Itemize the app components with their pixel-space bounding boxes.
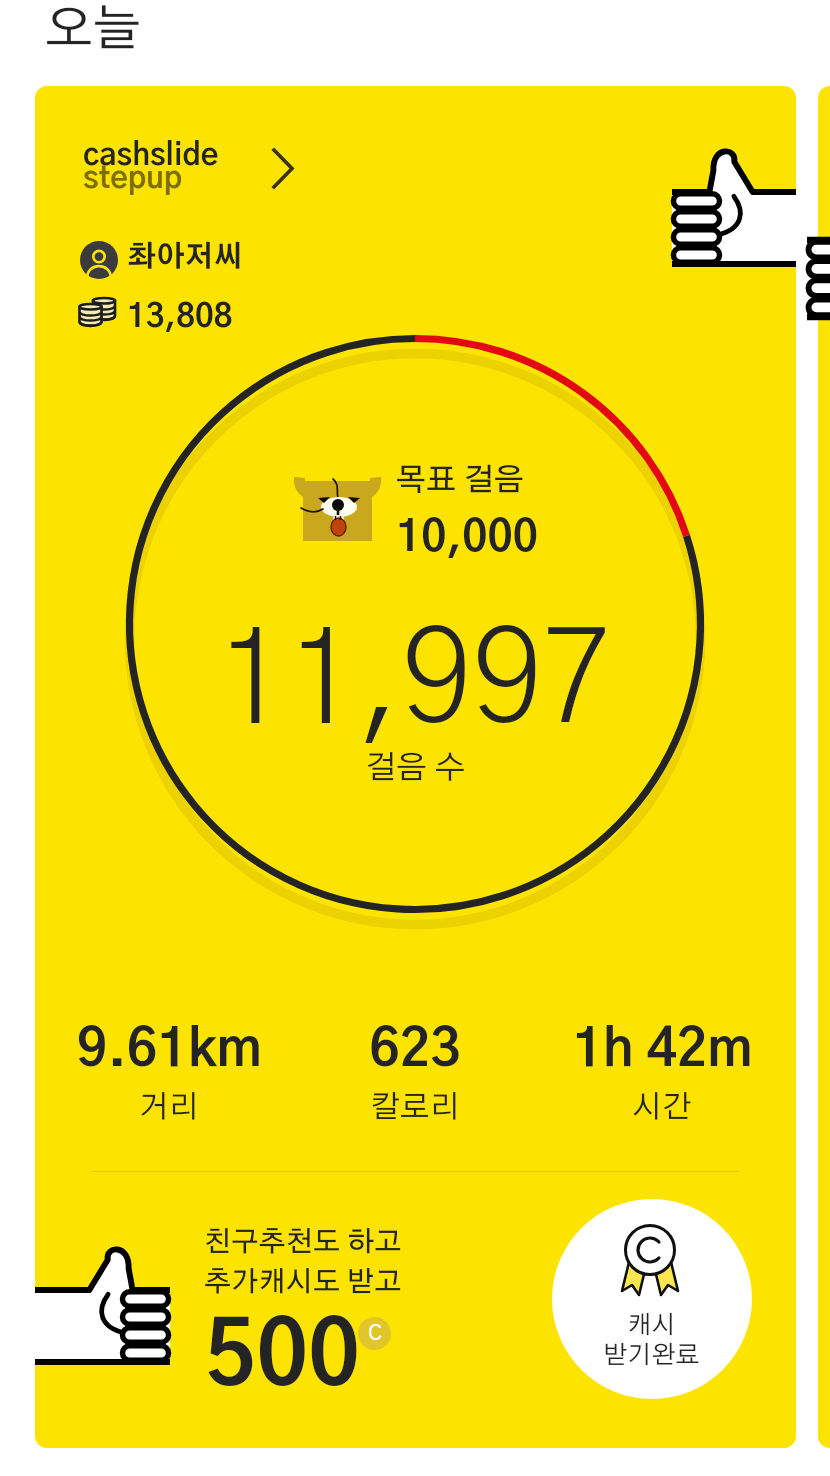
- staticText: C: [368, 1323, 382, 1344]
- staticText: 친구추천도 하고: [204, 1229, 402, 1257]
- staticText: 1h 42m: [572, 1025, 753, 1077]
- staticText: cashslide: [83, 141, 219, 171]
- staticText: stepup: [83, 164, 183, 194]
- staticText: 오늘: [45, 5, 142, 55]
- staticText: 추가캐시도 받고: [204, 1269, 402, 1297]
- staticText: 걸음 수: [365, 752, 466, 784]
- staticText: 칼로리: [370, 1092, 460, 1123]
- staticText: 캐시: [627, 1313, 676, 1338]
- staticText: 촤아저씨: [127, 243, 243, 272]
- staticText: 9.61km: [77, 1025, 262, 1077]
- staticText: 500: [205, 1314, 360, 1402]
- staticText: 13,808: [127, 301, 233, 333]
- staticText: 11,997: [217, 618, 614, 747]
- staticText: 받기완료: [603, 1343, 700, 1368]
- staticText: 10,000: [396, 517, 538, 560]
- button[interactable]: 열기: [255, 124, 345, 214]
- staticText: 목표 걸음: [396, 465, 525, 496]
- button[interactable]: 캐시: [552, 1199, 752, 1399]
- staticText: 623: [369, 1025, 461, 1077]
- staticText: 시간: [632, 1092, 692, 1123]
- button[interactable]: cashslide: [35, 86, 796, 1448]
- staticText: 거리: [139, 1092, 199, 1123]
